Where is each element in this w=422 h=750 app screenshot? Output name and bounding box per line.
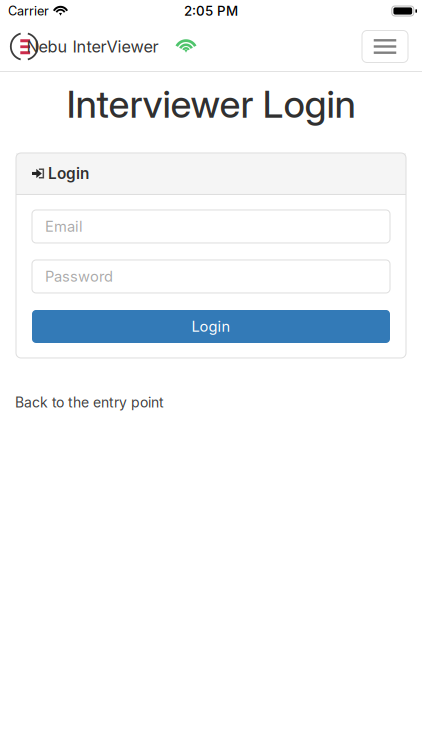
button[interactable]: Back to the entry point — [15, 394, 164, 411]
button[interactable]: Login — [32, 310, 390, 343]
staticText: 2:05 PM — [184, 3, 238, 19]
button[interactable]: Email — [32, 210, 390, 243]
staticText: Back to the entry point — [15, 394, 164, 411]
staticText: Nebu InterViewer — [26, 37, 158, 56]
staticText: Email — [45, 218, 83, 235]
button[interactable]: Password — [32, 260, 390, 293]
staticText: Login — [48, 164, 89, 183]
button[interactable]: Menu — [362, 30, 408, 62]
staticText: Password — [45, 268, 113, 285]
staticText: Login — [191, 318, 230, 335]
staticText: Carrier — [8, 3, 49, 19]
staticText: Interviewer Login — [66, 81, 355, 127]
